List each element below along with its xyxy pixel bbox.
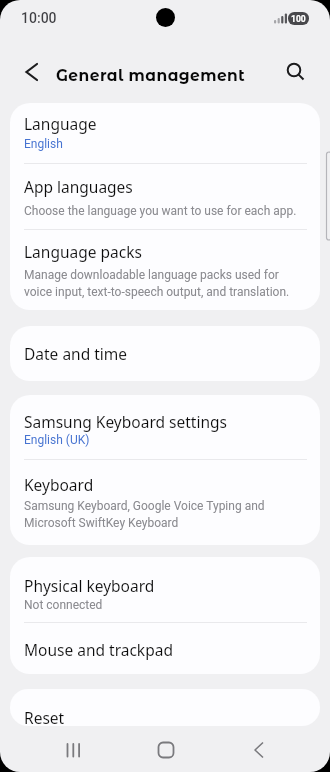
staticText: Reset [24, 707, 65, 726]
staticText: Samsung Keyboard, Google Voice Typing an… [24, 499, 265, 530]
button[interactable] [280, 56, 312, 88]
button[interactable] [53, 730, 93, 770]
staticText: Choose the language you want to use for … [24, 204, 297, 218]
button[interactable] [239, 730, 279, 770]
staticText: Physical keyboard [24, 575, 155, 596]
staticText: Manage downloadable language packs used … [24, 268, 290, 299]
button[interactable]: Date and time [10, 326, 320, 381]
staticText: Language [24, 113, 97, 134]
staticText: English (UK) [24, 433, 90, 447]
button[interactable]: Language [10, 103, 320, 163]
staticText: General management [56, 66, 245, 85]
button[interactable]: Reset [10, 689, 320, 726]
staticText: 10:00 [21, 10, 57, 26]
staticText: Mouse and trackpad [24, 639, 173, 660]
button[interactable]: Keyboard [10, 460, 320, 545]
staticText: App languages [24, 176, 133, 197]
button[interactable] [146, 730, 186, 770]
button[interactable]: Language packs [10, 230, 320, 310]
staticText: 100 [291, 14, 306, 24]
staticText: Date and time [24, 343, 128, 364]
staticText: Not connected [24, 598, 103, 612]
button[interactable]: Physical keyboard [10, 557, 320, 622]
button[interactable]: App languages [10, 164, 320, 229]
staticText: Samsung Keyboard settings [24, 411, 227, 432]
button[interactable]: Samsung Keyboard settings [10, 395, 320, 459]
staticText: Language packs [24, 241, 142, 262]
staticText: English [24, 137, 63, 151]
button[interactable]: Mouse and trackpad [10, 623, 320, 674]
staticText: Keyboard [24, 474, 94, 495]
button[interactable] [16, 56, 48, 88]
